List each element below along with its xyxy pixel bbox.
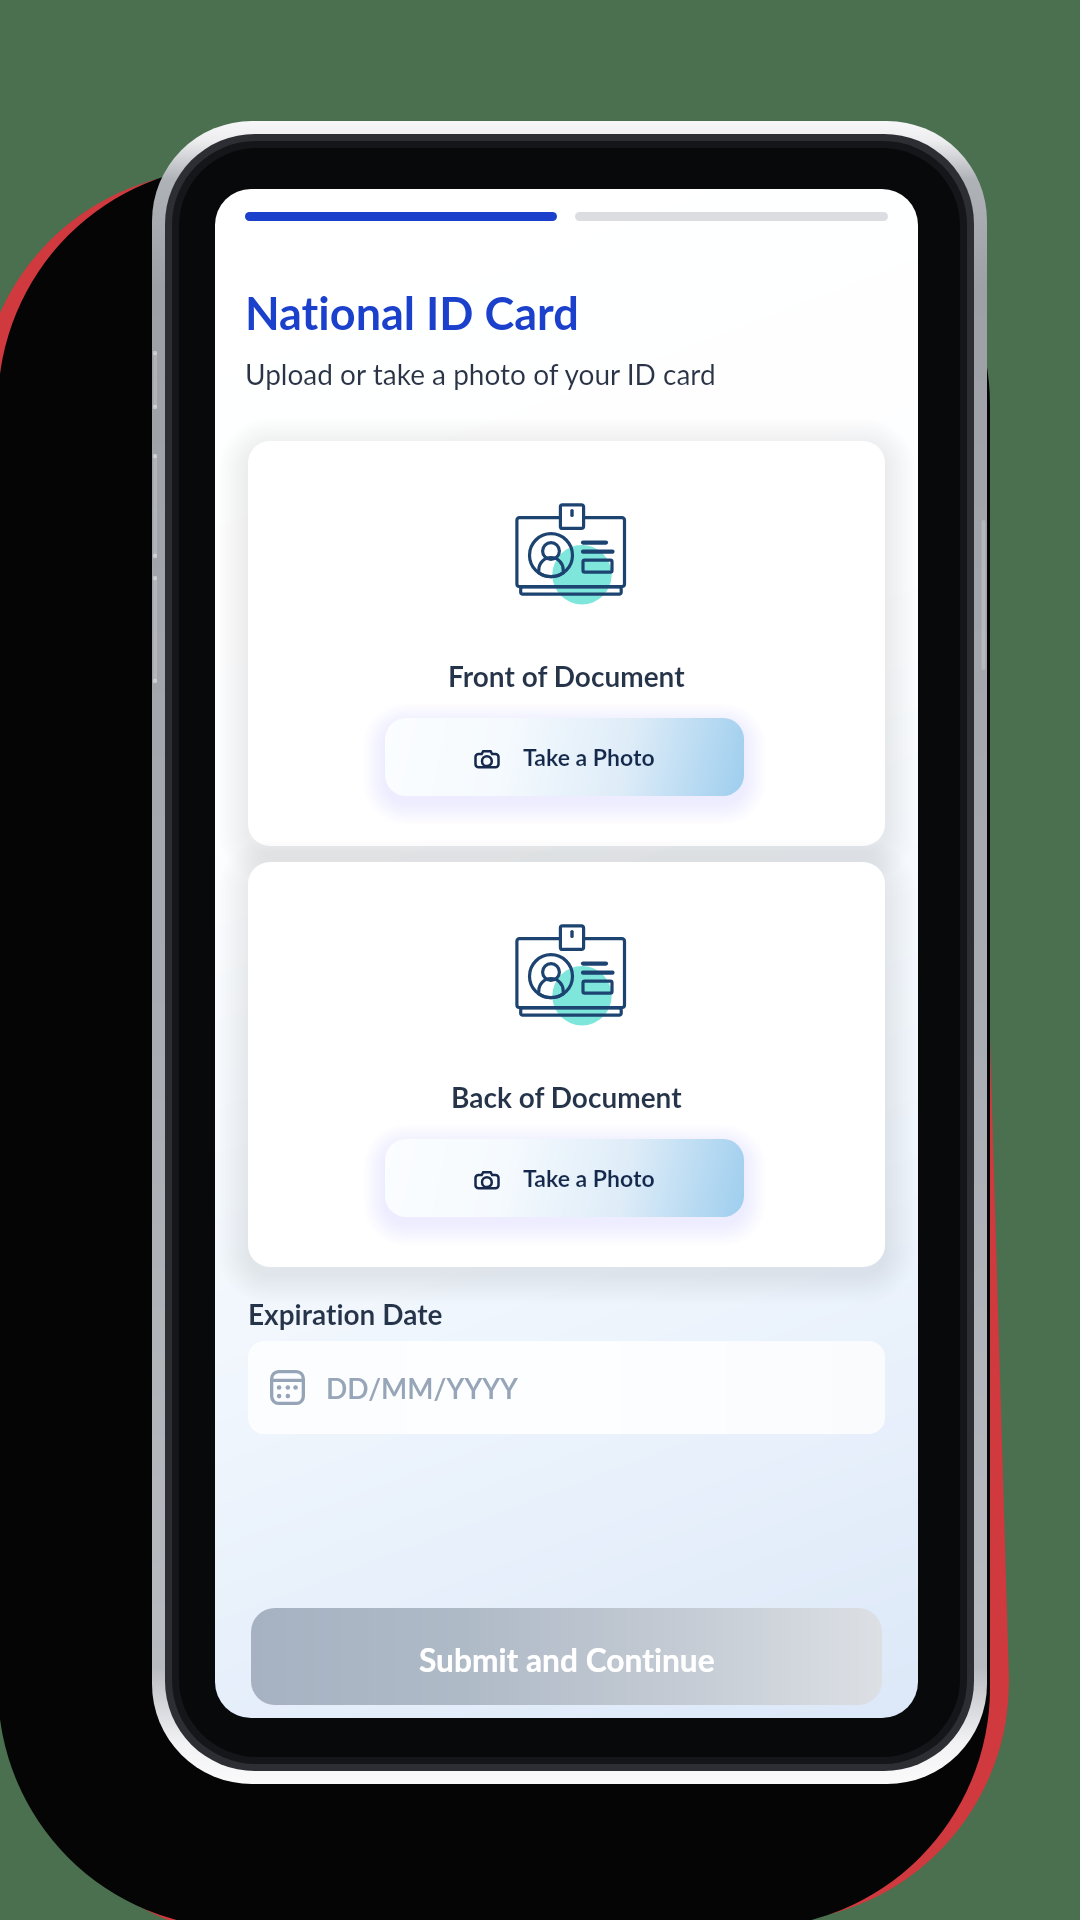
staticText: Back of Document <box>451 1080 682 1114</box>
button[interactable]: Take a photo <box>385 1139 744 1217</box>
staticText: Upload or take a photo of your ID card <box>245 357 716 391</box>
other: Take a photo <box>475 746 499 768</box>
button[interactable]: Pick date <box>248 1341 885 1434</box>
staticText: Submit and Continue <box>419 1641 715 1679</box>
staticText: DD/MM/YYYY <box>326 1371 518 1405</box>
staticText: Take a Photo <box>523 743 655 771</box>
button[interactable]: Submit and Continue <box>251 1608 882 1705</box>
other: Take a photo <box>475 1167 499 1189</box>
staticText: Take a Photo <box>523 1164 655 1192</box>
staticText: Front of Document <box>448 659 685 693</box>
other: Pick date <box>270 1370 305 1405</box>
button[interactable]: Take a photo <box>385 718 744 796</box>
staticText: National ID Card <box>245 286 579 340</box>
staticText: Expiration Date <box>248 1297 443 1331</box>
